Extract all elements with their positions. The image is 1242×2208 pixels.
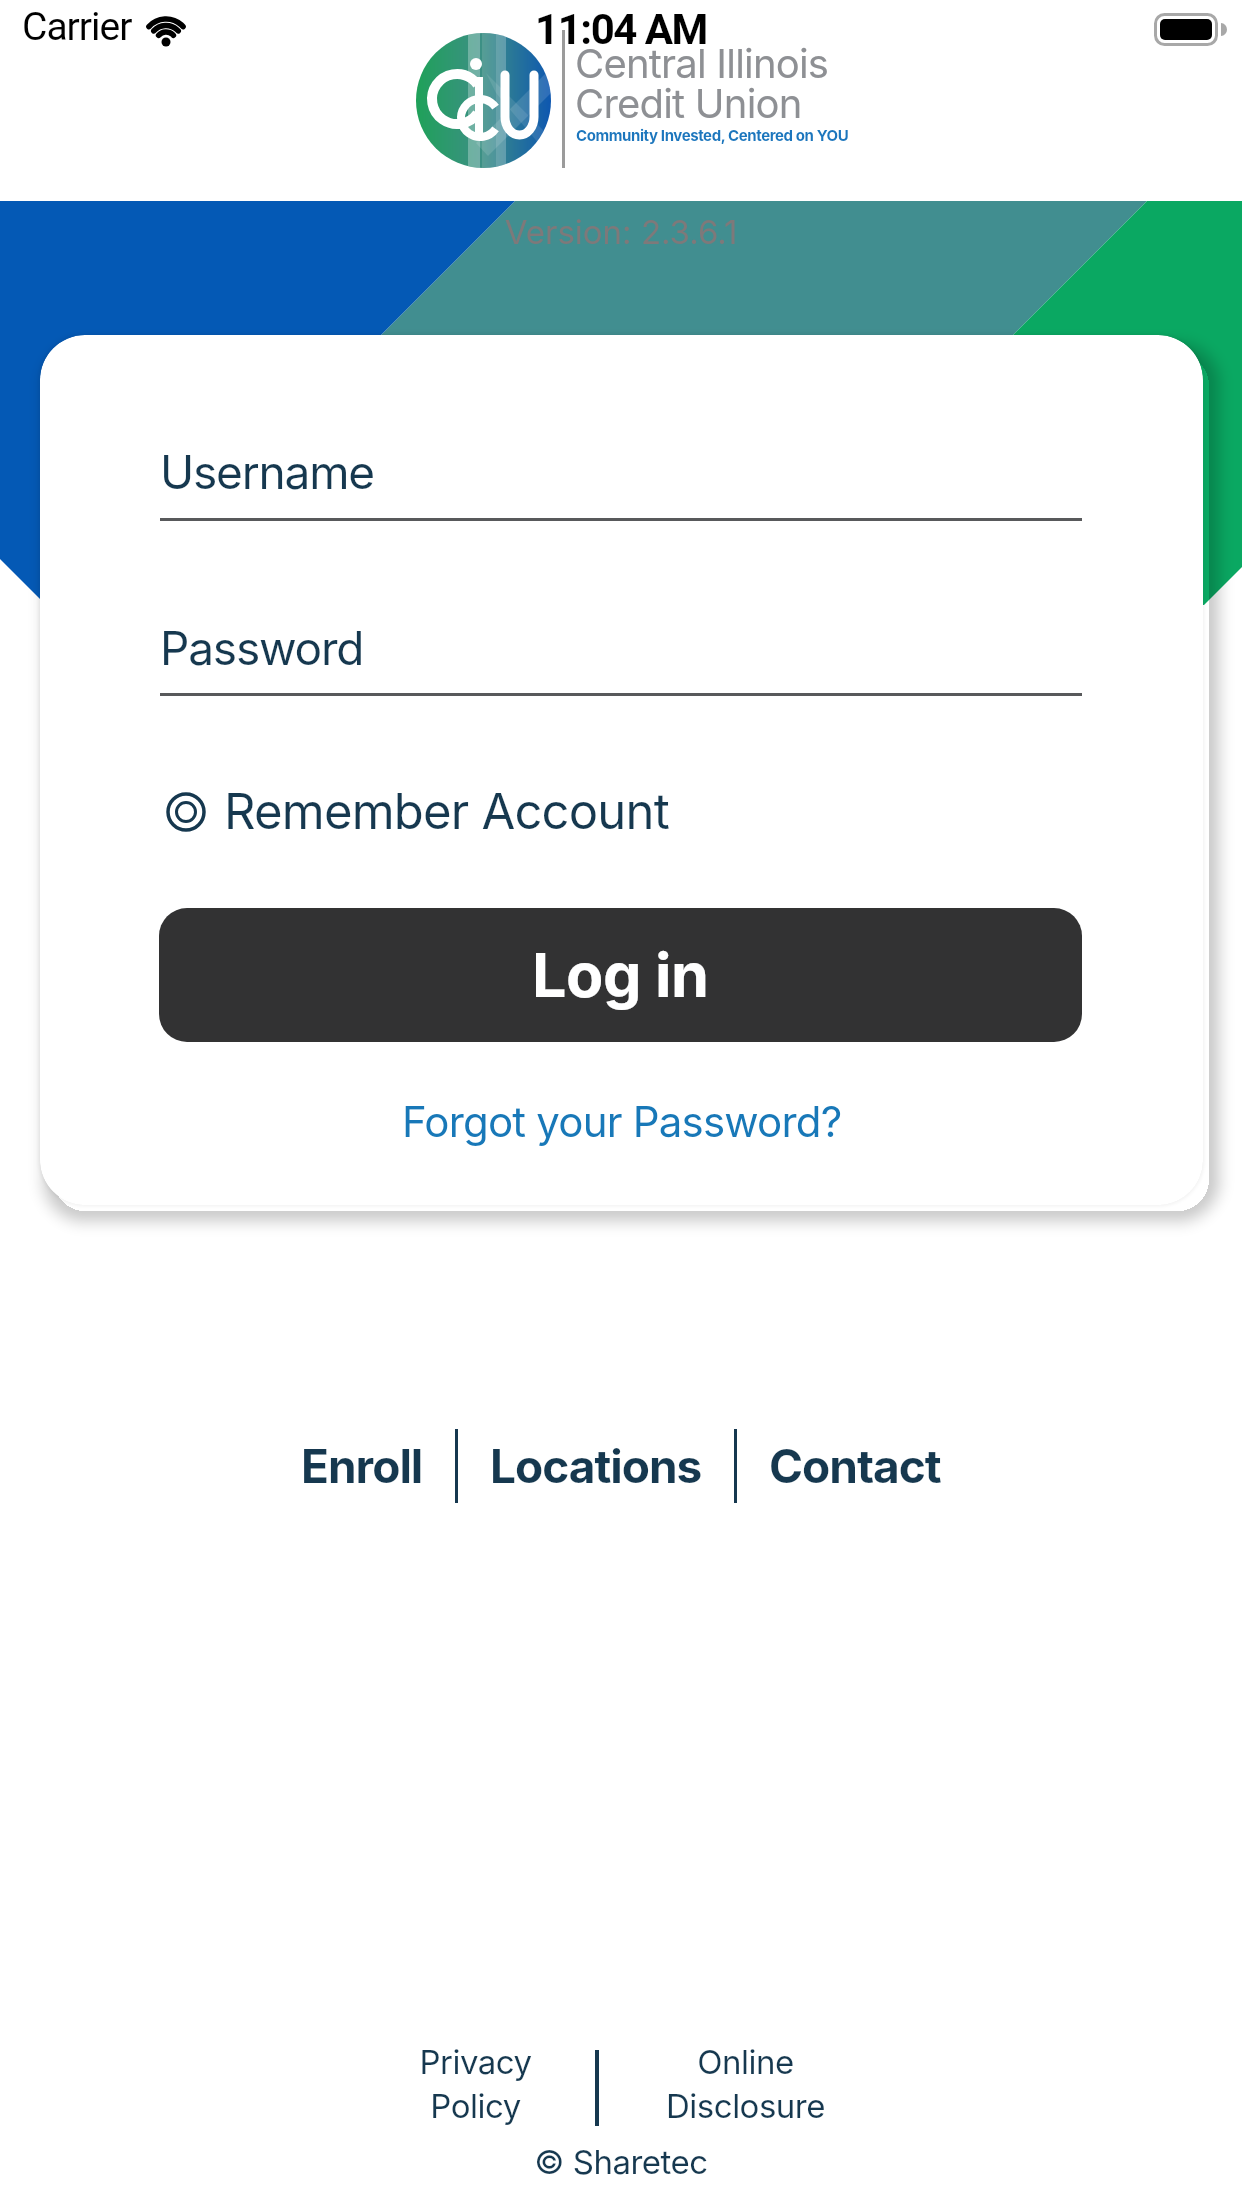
staticText: Carrier [22, 4, 132, 50]
button[interactable]: Remember Account [164, 782, 669, 841]
button[interactable]: Enroll [301, 1438, 423, 1494]
staticText: Username [160, 444, 374, 500]
button[interactable] [160, 430, 1082, 522]
button[interactable]: Online Disclosure [620, 2036, 870, 2132]
staticText: Log in [532, 938, 709, 1012]
staticText: 11:04 AM [0, 5, 1242, 54]
staticText: Privacy Policy [419, 2042, 532, 2126]
staticText: Community Invested, Centered on YOU [576, 126, 849, 144]
staticText: Online Disclosure [666, 2042, 825, 2126]
staticText: Version: 2.3.6.1 [0, 212, 1242, 252]
staticText: Remember Account [224, 782, 669, 841]
staticText: Password [160, 620, 364, 676]
button[interactable] [160, 606, 1082, 698]
staticText: Central Illinois [575, 39, 829, 87]
button[interactable]: Locations [490, 1438, 702, 1494]
button[interactable]: Contact [769, 1438, 941, 1494]
staticText: © Sharetec [0, 2142, 1242, 2182]
staticText: Credit Union [575, 79, 802, 127]
button[interactable]: Log in [159, 908, 1082, 1042]
button[interactable]: Privacy Policy [330, 2036, 620, 2132]
button[interactable]: Forgot your Password? [402, 1096, 842, 1147]
